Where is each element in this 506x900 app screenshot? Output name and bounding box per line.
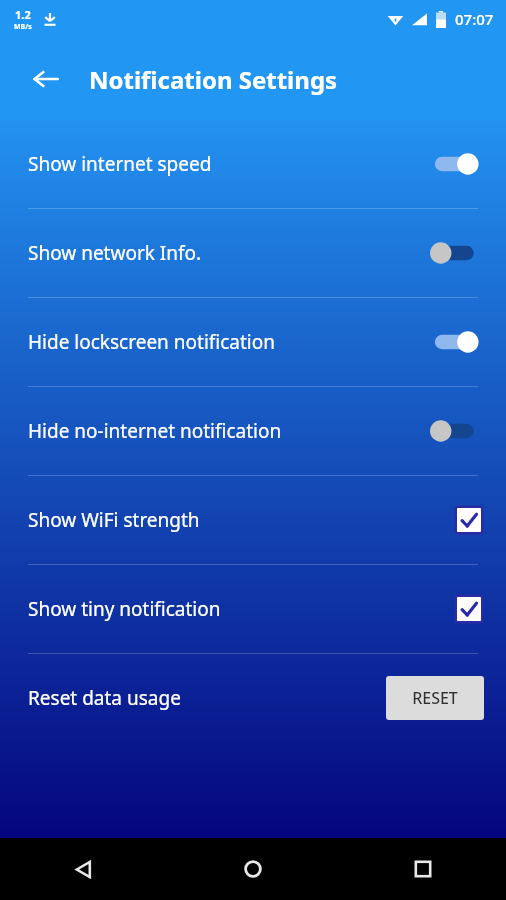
staticText: Show network Info. xyxy=(28,240,430,266)
button[interactable]: Show WiFi strength xyxy=(0,476,506,564)
button[interactable]: Back xyxy=(60,846,106,892)
staticText: Show internet speed xyxy=(28,151,430,177)
staticText: 1.2 xyxy=(15,7,31,22)
button[interactable]: Reset data usage xyxy=(0,654,506,742)
button[interactable]: Hide no-internet notification xyxy=(0,387,506,475)
button[interactable]: Show internet speed xyxy=(0,120,506,208)
staticText: Notification Settings xyxy=(89,63,338,96)
staticText: Reset data usage xyxy=(28,685,386,711)
button[interactable]: Show network Info. xyxy=(0,209,506,297)
button[interactable]: Show tiny notification xyxy=(0,565,506,653)
button[interactable]: Home xyxy=(230,846,276,892)
staticText: 07:07 xyxy=(455,9,494,29)
button[interactable]: Recent apps xyxy=(400,846,446,892)
staticText: RESET xyxy=(412,687,458,709)
staticText: Show tiny notification xyxy=(28,596,454,622)
button[interactable]: RESET xyxy=(386,676,484,720)
staticText: Hide no-internet notification xyxy=(28,418,430,444)
button[interactable]: Hide lockscreen notification xyxy=(0,298,506,386)
staticText: Show WiFi strength xyxy=(28,507,454,533)
staticText: MB/s xyxy=(14,22,32,32)
button[interactable]: Back xyxy=(22,55,70,103)
staticText: Hide lockscreen notification xyxy=(28,329,430,355)
